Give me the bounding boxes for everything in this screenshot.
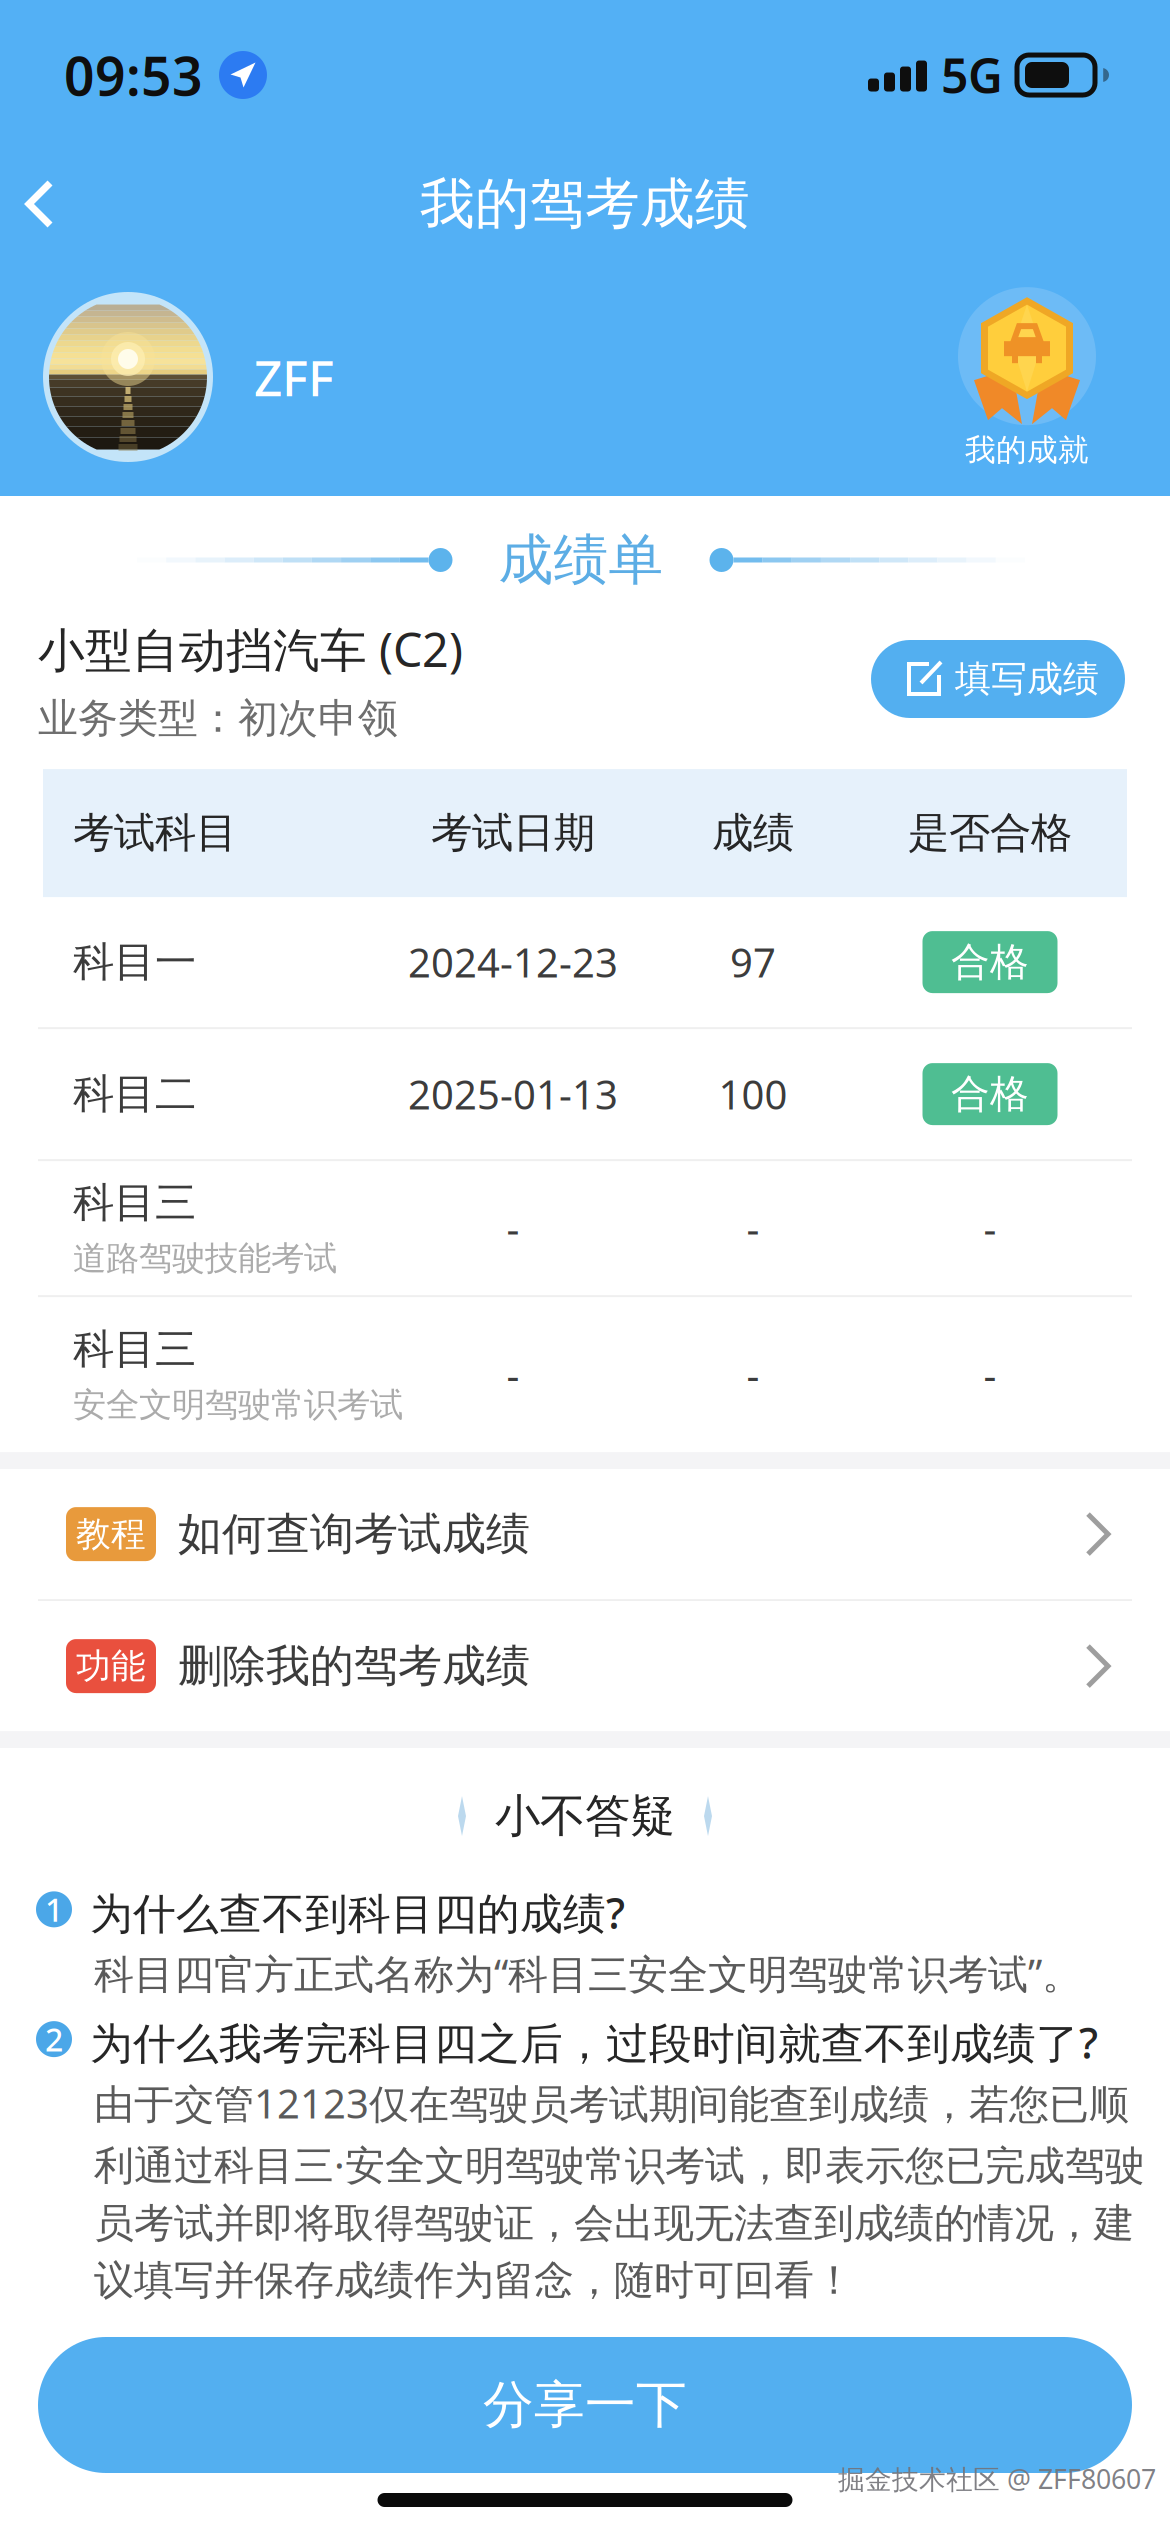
- staticText: 科目一: [73, 937, 196, 987]
- staticText: 1: [45, 1888, 63, 1931]
- staticText: 功能: [76, 1645, 146, 1687]
- staticText: 2: [45, 2018, 63, 2060]
- staticText: -: [506, 1348, 519, 1401]
- staticText: 填写成绩: [955, 657, 1099, 701]
- staticText: 是否合格: [908, 808, 1072, 858]
- button[interactable]: 教程: [0, 1469, 1170, 1599]
- staticText: 科目三: [73, 1177, 196, 1228]
- staticText: 考试日期: [431, 808, 595, 858]
- staticText: 成绩单: [498, 526, 663, 593]
- staticText: 科目二: [73, 1069, 196, 1119]
- staticText: 2025-01-13: [408, 1067, 618, 1121]
- staticText: 合格: [951, 1070, 1029, 1118]
- staticText: -: [983, 1348, 996, 1401]
- staticText: 5G: [941, 43, 1003, 107]
- staticText: 考试科目: [73, 808, 237, 858]
- staticText: 为什么查不到科目四的成绩?: [90, 1884, 625, 1941]
- staticText: 安全文明驾驶常识考试: [73, 1384, 403, 1425]
- staticText: -: [983, 1201, 996, 1255]
- staticText: ZFF: [254, 344, 334, 410]
- staticText: 成绩: [712, 808, 794, 858]
- staticText: 分享一下: [483, 2374, 687, 2436]
- staticText: 我的驾考成绩: [420, 170, 750, 237]
- staticText: 删除我的驾考成绩: [178, 1639, 530, 1693]
- staticText: 09:53: [64, 40, 203, 110]
- staticText: -: [746, 1348, 759, 1401]
- staticText: -: [506, 1201, 519, 1255]
- button[interactable]: 我的成就: [958, 281, 1096, 473]
- staticText: 为什么我考完科目四之后，过段时间就查不到成绩了?: [90, 2014, 1098, 2071]
- button[interactable]: 功能: [0, 1601, 1170, 1731]
- staticText: 科目四官方正式名称为“科目三安全文明驾驶常识考试”。: [94, 1947, 1082, 2000]
- staticText: 2024-12-23: [408, 935, 618, 989]
- staticText: 教程: [76, 1513, 146, 1555]
- staticText: 100: [718, 1067, 787, 1121]
- staticText: 道路驾驶技能考试: [73, 1238, 337, 1279]
- staticText: 掘金技术社区 @ ZFF80607: [838, 2461, 1156, 2496]
- staticText: 如何查询考试成绩: [178, 1507, 530, 1561]
- button[interactable]: Back: [0, 155, 85, 253]
- staticText: 合格: [951, 938, 1029, 986]
- staticText: 97: [730, 935, 776, 989]
- staticText: 我的成就: [965, 431, 1089, 469]
- staticText: 小不答疑: [495, 1788, 675, 1844]
- staticText: 科目三: [73, 1324, 196, 1374]
- staticText: 业务类型：初次申领: [38, 694, 398, 743]
- staticText: 由于交管12123仅在驾驶员考试期间能查到成绩，若您已顺利通过科目三·安全文明驾…: [94, 2076, 1145, 2305]
- button[interactable]: 分享一下: [38, 2337, 1132, 2473]
- staticText: -: [746, 1201, 759, 1255]
- staticText: 小型自动挡汽车 (C2): [38, 618, 463, 680]
- button[interactable]: 填写成绩: [871, 640, 1125, 718]
